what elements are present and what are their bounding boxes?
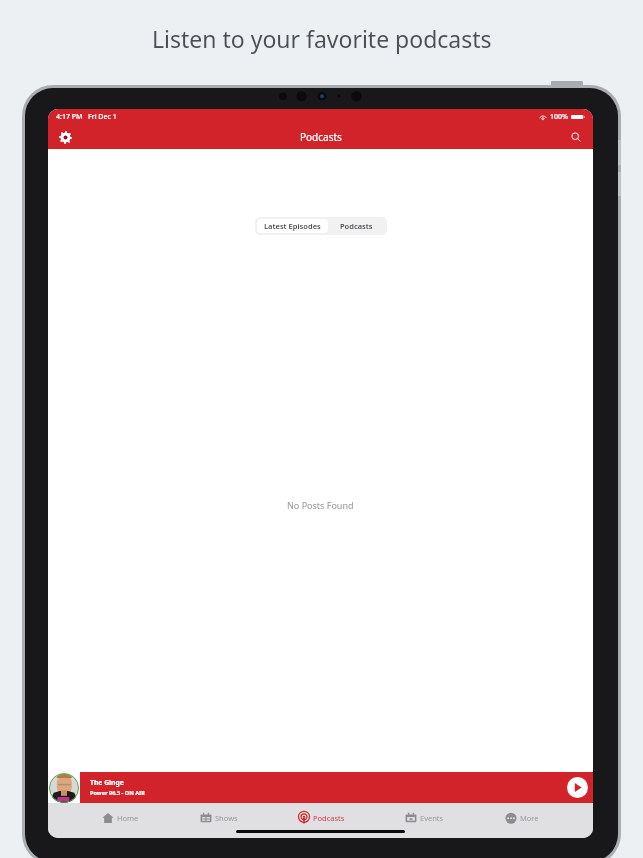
staticText: Podcasts [300, 130, 342, 144]
staticText: Listen to your favorite podcasts [152, 23, 492, 54]
staticText: Events [420, 813, 444, 823]
button[interactable]: Home [96, 809, 145, 827]
button[interactable]: Settings [56, 128, 74, 146]
staticText: Podcasts [313, 813, 345, 823]
button[interactable]: Now playing artwork [49, 773, 79, 803]
staticText: Shows [215, 813, 238, 823]
button[interactable]: Shows [194, 809, 244, 827]
button[interactable]: Podcasts [328, 219, 385, 233]
staticText: Home [117, 813, 139, 823]
staticText: Fri Dec 1 [88, 112, 117, 122]
staticText: More [520, 813, 539, 823]
button[interactable]: Play [567, 777, 588, 798]
staticText: The Ginge [90, 778, 124, 787]
button[interactable]: Podcasts [292, 809, 351, 827]
staticText: 4:17 PM [56, 112, 83, 122]
button[interactable]: More [499, 809, 545, 827]
staticText: Power 96.5 - ON AIR [90, 789, 145, 797]
button[interactable]: Search [567, 128, 585, 146]
staticText: Podcasts [340, 221, 373, 231]
staticText: 100% [550, 112, 568, 122]
staticText: No Posts Found [287, 499, 354, 511]
staticText: Latest Episodes [264, 221, 321, 231]
button[interactable]: Latest Episodes [257, 219, 328, 233]
button[interactable]: The Ginge [80, 772, 593, 803]
button[interactable]: Events [399, 809, 450, 827]
